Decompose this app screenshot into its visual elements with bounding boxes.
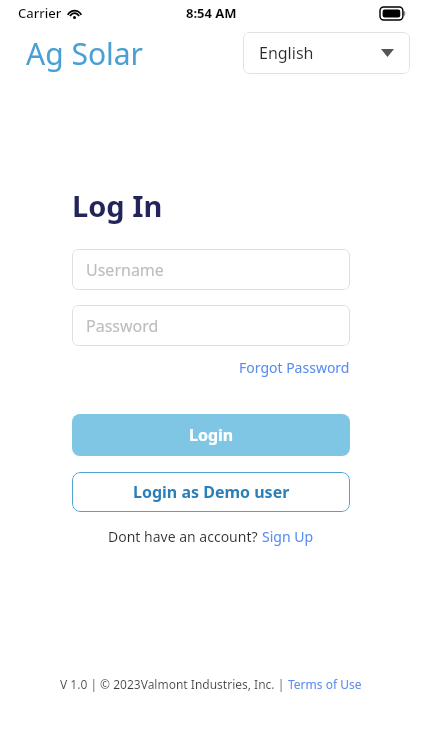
button[interactable]: Login xyxy=(72,414,350,456)
button[interactable]: Forgot Password xyxy=(239,358,350,377)
button[interactable]: Dont have an account? xyxy=(108,527,314,546)
staticText: Password xyxy=(86,315,159,337)
staticText: English xyxy=(259,42,314,64)
staticText: Log In xyxy=(72,186,163,225)
staticText: Username xyxy=(86,259,164,281)
button[interactable]: Login as Demo user xyxy=(72,472,350,512)
staticText: Sign Up xyxy=(262,527,314,546)
staticText: Login as Demo user xyxy=(133,481,290,503)
button[interactable]: Password xyxy=(72,305,350,346)
button[interactable]: Username xyxy=(72,249,350,290)
button[interactable]: English xyxy=(243,32,410,74)
staticText: Login xyxy=(189,424,234,446)
staticText: V 1.0 | © 2023Valmont Industries, Inc. | xyxy=(60,676,288,692)
staticText: 8:54 AM xyxy=(186,4,237,22)
button[interactable]: Terms of Use xyxy=(288,676,362,692)
staticText: Carrier xyxy=(18,4,62,22)
staticText: Dont have an account? xyxy=(108,527,262,546)
staticText: Ag Solar xyxy=(26,33,143,74)
